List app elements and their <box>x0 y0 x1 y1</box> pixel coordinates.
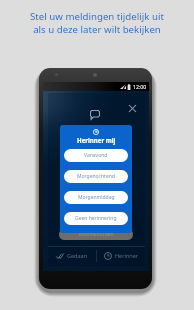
button[interactable]: Beantwoorden <box>59 229 133 240</box>
button[interactable]: Geen herinnering <box>64 212 128 225</box>
staticText: Morgenochtend <box>77 173 115 180</box>
staticText: Morgenmiddag <box>78 194 115 201</box>
button[interactable]: Message <box>90 110 100 120</box>
button[interactable]: Morgenochtend <box>64 170 128 183</box>
staticText: Vanavond <box>84 152 108 159</box>
staticText: Herinner mij <box>77 136 116 144</box>
button[interactable]: Gedaan <box>48 246 96 265</box>
staticText: 12:00 <box>133 83 147 90</box>
staticText: Herinner <box>115 252 139 259</box>
staticText: Beantwoorden <box>79 231 114 238</box>
button[interactable]: Close <box>128 104 137 113</box>
button[interactable]: Herinner <box>97 246 145 265</box>
staticText: Stel uw meldingen tijdelijk uit als u de… <box>30 10 164 36</box>
button[interactable]: Morgenmiddag <box>64 191 128 204</box>
staticText: Gedaan <box>67 252 88 259</box>
button[interactable]: Vanavond <box>64 149 128 162</box>
staticText: Geen herinnering <box>75 215 117 222</box>
